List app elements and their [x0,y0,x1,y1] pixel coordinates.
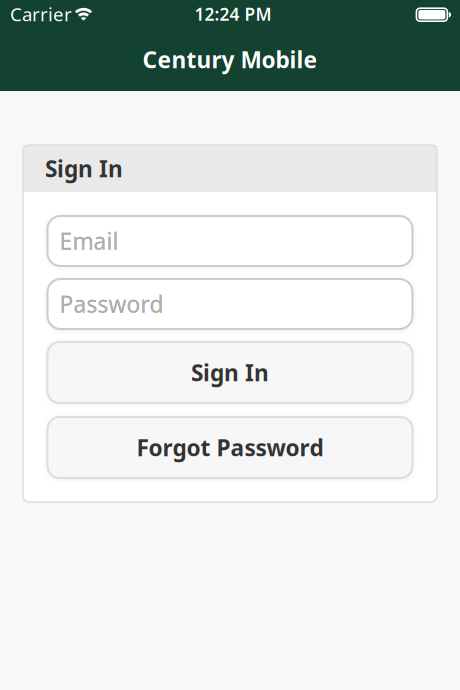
textField[interactable]: Email [59,226,400,256]
staticText: Forgot Password [136,432,323,462]
staticText: Carrier [10,2,72,26]
staticText: Password [59,289,163,319]
staticText: 12:24 PM [194,2,271,25]
staticText: Sign In [191,357,269,387]
staticText: Century Mobile [142,44,317,74]
staticText: Email [59,226,118,256]
staticText: Email [59,226,118,256]
button[interactable]: Sign In [47,342,412,403]
secureTextField[interactable]: Password [59,289,400,319]
staticText: Sign In [45,153,123,183]
button[interactable]: Forgot Password [47,417,412,478]
staticText: Password [59,289,163,319]
